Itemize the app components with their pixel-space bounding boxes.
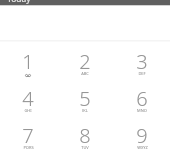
button[interactable]: 8 (56, 117, 113, 154)
button[interactable]: 2 (56, 43, 113, 80)
staticText: 6 (136, 85, 148, 112)
staticText: GHI (24, 108, 32, 112)
staticText: 3 (136, 48, 148, 75)
staticText: 9 (136, 122, 148, 149)
button[interactable]: 6 (113, 80, 170, 117)
staticText: TUV (81, 145, 89, 149)
staticText: DEF (138, 71, 146, 75)
other: Voicemail (25, 74, 31, 77)
button[interactable]: 7 (0, 117, 56, 154)
staticText: 5 (79, 85, 91, 112)
staticText: 4 (22, 85, 34, 112)
staticText: WXYZ (137, 145, 148, 149)
staticText: ABC (81, 71, 89, 75)
staticText: 2 (79, 48, 91, 75)
button[interactable]: 1 (0, 43, 56, 80)
staticText: 8 (79, 122, 91, 149)
button[interactable]: 9 (113, 117, 170, 154)
staticText: PQRS (23, 145, 34, 149)
button[interactable]: 4 (0, 80, 56, 117)
button[interactable]: 5 (56, 80, 113, 117)
staticText: 1 (22, 48, 34, 75)
staticText: Today (7, 0, 31, 5)
staticText: MNO (137, 108, 147, 112)
staticText: JKL (82, 108, 88, 112)
staticText: 7 (22, 122, 34, 149)
button[interactable]: Today (0, 0, 170, 5)
button[interactable]: 3 (113, 43, 170, 80)
